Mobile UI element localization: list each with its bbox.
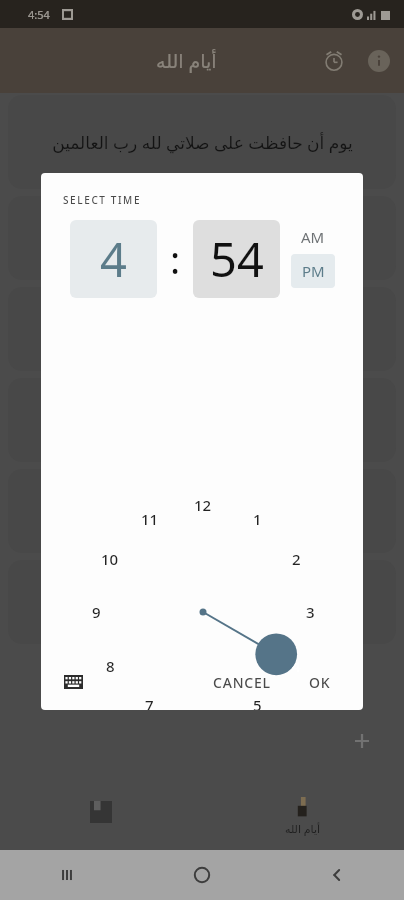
button[interactable]: OK — [309, 673, 331, 692]
button[interactable]: يوم أن علمني ربي حسن التوكل عليه — [8, 560, 396, 644]
button[interactable]: 8 — [96, 653, 124, 679]
staticText: 4 — [292, 656, 301, 676]
staticText: يوم أن حافظت على صلاتي لله رب العالمين — [52, 131, 353, 154]
button[interactable]: 4 — [282, 653, 310, 679]
staticText: 11 — [141, 509, 159, 529]
staticText: 3 — [306, 602, 315, 622]
button[interactable]: 7 — [135, 692, 163, 710]
button[interactable]: 1 — [243, 506, 271, 532]
button[interactable]: CANCEL — [213, 673, 271, 692]
staticText: أيام الله — [285, 821, 321, 836]
button[interactable]: 11 — [136, 506, 164, 532]
button[interactable]: Add — [337, 716, 387, 766]
staticText: CANCEL — [213, 673, 271, 692]
button[interactable]: 5 — [243, 692, 271, 710]
staticText: 54 — [210, 227, 264, 291]
staticText: يوم أن ذكرت الله — [142, 500, 263, 523]
button[interactable]: يوم أن قرأت القرآن — [8, 196, 396, 280]
staticText: 12 — [194, 495, 212, 515]
button[interactable]: 2 — [282, 546, 310, 572]
button[interactable]: 9 — [82, 599, 110, 625]
button[interactable]: Book — [0, 782, 202, 850]
button[interactable]: Info — [358, 40, 400, 82]
staticText: يوم أن علمني ربي حسن التوكل عليه — [75, 591, 329, 614]
staticText: 8 — [106, 656, 115, 676]
staticText: يوم أن قرأت القرآن — [133, 227, 271, 250]
button[interactable]: 4 — [70, 220, 157, 298]
staticText: 7 — [145, 695, 154, 710]
staticText: 10 — [101, 549, 119, 569]
staticText: 1 — [253, 509, 262, 529]
button[interactable]: 3 — [296, 599, 324, 625]
button[interactable]: أيام الله — [202, 782, 404, 850]
staticText: PM — [302, 261, 325, 281]
button[interactable]: يوم أن تصدقت لله — [8, 378, 396, 462]
staticText: أيام الله — [156, 48, 217, 74]
staticText: 2 — [292, 549, 301, 569]
button[interactable]: يوم أن حافظت على صلاتي لله رب العالمين — [8, 95, 396, 189]
button[interactable]: Alarm — [312, 39, 356, 83]
staticText: 4 — [100, 227, 127, 291]
staticText: 5 — [253, 695, 262, 710]
button[interactable]: AM — [291, 220, 335, 254]
button[interactable]: يوم أن صمت لله — [8, 287, 396, 371]
staticText: : — [170, 233, 181, 285]
button[interactable]: 12 — [189, 492, 217, 518]
button[interactable]: Keyboard input — [55, 664, 91, 700]
staticText: 4:54 — [28, 7, 50, 22]
button[interactable]: يوم أن ذكرت الله — [8, 469, 396, 553]
button[interactable]: PM — [291, 254, 335, 288]
staticText: OK — [309, 673, 331, 692]
button[interactable]: 10 — [96, 546, 124, 572]
staticText: SELECT TIME — [63, 193, 142, 207]
staticText: 9 — [92, 602, 101, 622]
staticText: AM — [301, 227, 325, 247]
button[interactable]: 54 — [193, 220, 280, 298]
